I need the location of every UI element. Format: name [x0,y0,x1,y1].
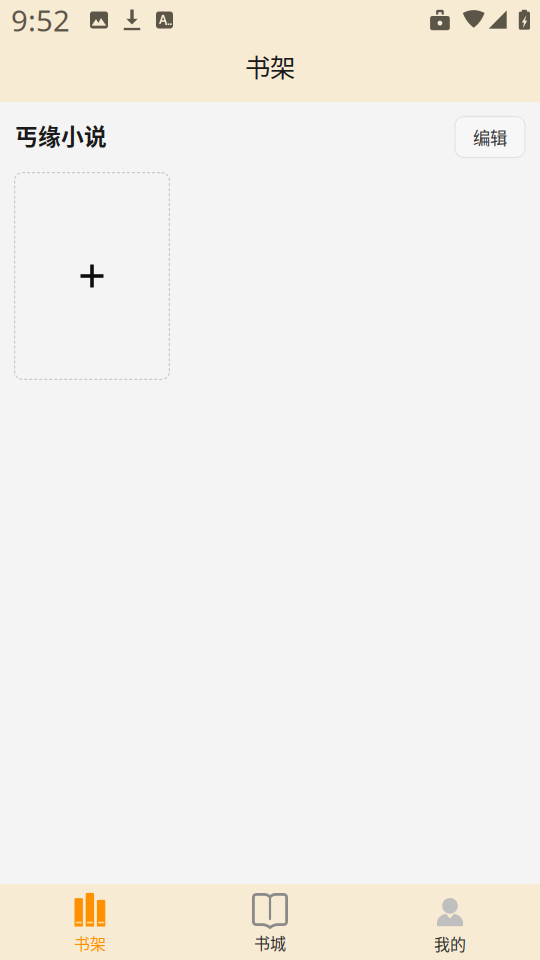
button[interactable]: 添加书籍 [14,172,170,380]
button[interactable]: 书架 [0,884,180,960]
staticText: 9:52 [11,0,70,40]
staticText: 书架 [74,931,106,955]
staticText: 书城 [254,931,286,954]
staticText: 我的 [434,932,466,955]
button[interactable]: 书城 [180,884,360,960]
staticText: 丐缘小说 [15,119,107,151]
button[interactable]: 我的 [360,884,540,960]
staticText: 书架 [245,48,295,84]
staticText: 编辑 [473,124,507,150]
button[interactable]: 编辑 [455,116,525,157]
